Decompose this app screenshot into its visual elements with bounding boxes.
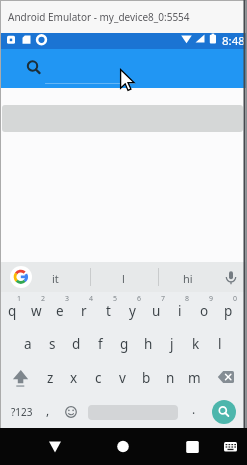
button[interactable] (10, 266, 32, 288)
staticText: g (120, 335, 129, 353)
button[interactable]: b (134, 363, 158, 393)
staticText: 2 (41, 294, 46, 304)
staticText: 8:48 (222, 33, 245, 49)
button[interactable] (224, 269, 238, 287)
staticText: 3 (65, 294, 70, 304)
button[interactable]: v (110, 363, 134, 393)
button[interactable]: hi (173, 263, 203, 293)
button[interactable]: m (182, 363, 206, 393)
staticText: 6 (137, 294, 142, 304)
staticText: n (166, 369, 175, 387)
button[interactable]: s (40, 329, 64, 359)
staticText: 0 (233, 294, 238, 304)
staticText: it (52, 271, 59, 286)
button[interactable]: . (186, 394, 202, 424)
button[interactable] (37, 428, 73, 465)
staticText: 7 (161, 294, 166, 304)
staticText: 8 (185, 294, 190, 304)
button[interactable]: h (136, 329, 160, 359)
staticText: z (47, 369, 54, 387)
staticText: x (70, 369, 78, 387)
button[interactable] (212, 400, 236, 424)
staticText: h (144, 335, 153, 353)
staticText: 5 (113, 294, 118, 304)
button[interactable]: t (96, 296, 120, 326)
staticText: i (178, 302, 182, 320)
button[interactable]: q (0, 296, 24, 326)
button[interactable] (64, 404, 78, 420)
button[interactable]: r (72, 296, 96, 326)
button[interactable]: y (120, 296, 144, 326)
staticText: b (142, 369, 151, 387)
staticText: f (98, 335, 103, 353)
button[interactable] (220, 428, 242, 465)
button[interactable]: e (48, 296, 72, 326)
button[interactable]: n (158, 363, 182, 393)
staticText: l (122, 271, 125, 286)
staticText: hi (183, 271, 193, 286)
button[interactable]: f (88, 329, 112, 359)
staticText: c (95, 369, 102, 387)
staticText: v (119, 369, 126, 387)
button[interactable]: c (86, 363, 110, 393)
button[interactable] (217, 370, 237, 386)
staticText: l (218, 335, 222, 353)
staticText: q (8, 302, 17, 320)
button[interactable]: ?123 (6, 397, 38, 427)
staticText: m (188, 369, 201, 387)
staticText: ?123 (11, 405, 33, 419)
button[interactable] (174, 428, 210, 465)
staticText: s (49, 335, 56, 353)
staticText: a (24, 335, 32, 353)
button[interactable]: w (24, 296, 48, 326)
staticText: y (129, 302, 136, 320)
button[interactable]: p (216, 296, 240, 326)
staticText: p (224, 302, 233, 320)
button[interactable] (24, 57, 42, 75)
staticText: . (192, 401, 196, 417)
button[interactable]: g (112, 329, 136, 359)
button[interactable]: i (168, 296, 192, 326)
staticText: 4 (89, 294, 94, 304)
staticText: d (72, 335, 81, 353)
button[interactable] (12, 370, 30, 388)
button[interactable]: k (184, 329, 208, 359)
staticText: r (81, 302, 87, 320)
staticText: e (56, 302, 64, 320)
button[interactable]: x (62, 363, 86, 393)
button[interactable]: z (38, 363, 62, 393)
button[interactable]: , (40, 395, 56, 425)
staticText: u (152, 302, 161, 320)
button[interactable]: it (40, 263, 70, 293)
staticText: Android Emulator - my_device8_0:5554 (8, 10, 190, 24)
staticText: 1 (17, 294, 22, 304)
staticText: k (192, 335, 200, 353)
button[interactable]: l (108, 263, 138, 293)
button[interactable]: u (144, 296, 168, 326)
staticText: t (106, 302, 111, 320)
button[interactable]: o (192, 296, 216, 326)
button[interactable]: j (160, 329, 184, 359)
button[interactable]: l (208, 329, 232, 359)
button[interactable] (0, 49, 247, 88)
staticText: , (46, 402, 50, 418)
button[interactable]: d (64, 329, 88, 359)
staticText: w (31, 302, 42, 320)
button[interactable] (105, 428, 141, 465)
staticText: o (200, 302, 209, 320)
button[interactable]: a (16, 329, 40, 359)
staticText: j (170, 335, 174, 353)
staticText: 9 (209, 294, 214, 304)
